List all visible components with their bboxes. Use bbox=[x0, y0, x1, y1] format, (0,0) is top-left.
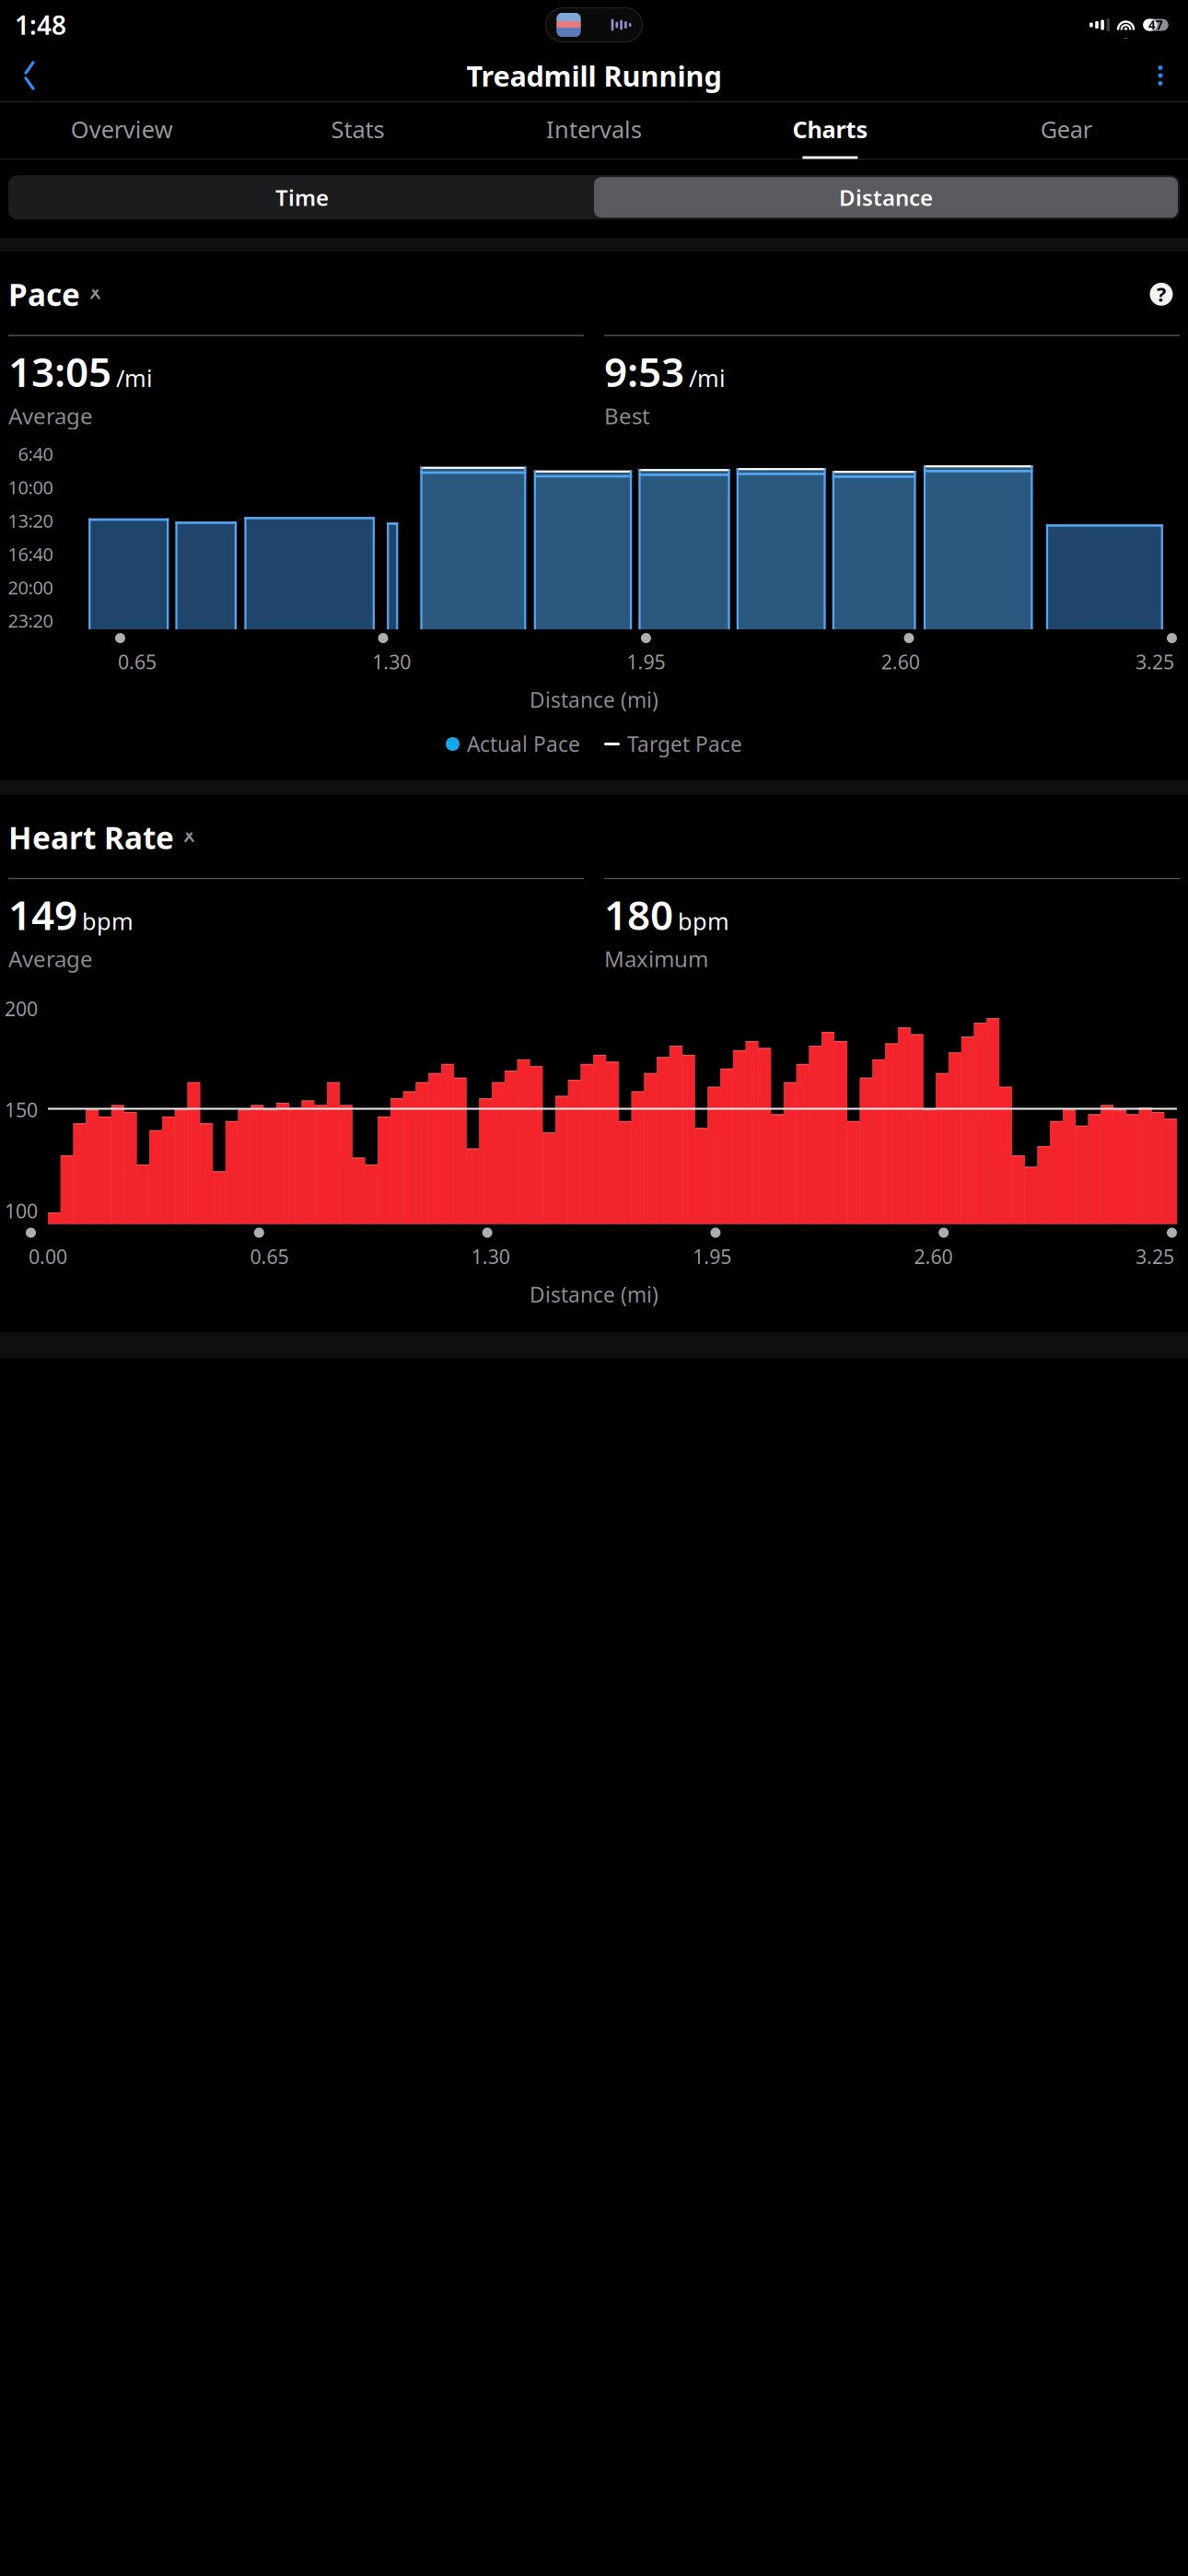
staticText: 1.95 bbox=[693, 1243, 731, 1269]
staticText: 13:20 bbox=[8, 508, 53, 533]
staticText: bpm bbox=[82, 905, 134, 936]
staticText: 20:00 bbox=[8, 575, 53, 600]
button[interactable]: Help about pace bbox=[1143, 276, 1180, 313]
staticText: Distance (mi) bbox=[530, 686, 658, 714]
staticText: 10:00 bbox=[8, 475, 53, 499]
staticText: 1.95 bbox=[627, 649, 665, 675]
staticText: Stats bbox=[331, 114, 385, 145]
button[interactable]: Time bbox=[10, 177, 594, 218]
staticText: 0.00 bbox=[29, 1243, 67, 1269]
staticText: Overview bbox=[71, 114, 173, 145]
staticText: Average bbox=[8, 401, 93, 430]
staticText: Actual Pace bbox=[467, 730, 580, 758]
staticText: Gear bbox=[1040, 114, 1092, 145]
staticText: Charts bbox=[792, 114, 868, 145]
staticText: 23:20 bbox=[8, 608, 53, 633]
staticText: 200 bbox=[5, 995, 38, 1022]
staticText: 1.30 bbox=[372, 649, 411, 675]
staticText: Treadmill Running bbox=[466, 57, 722, 94]
button[interactable]: Heart Rate bbox=[8, 811, 197, 863]
staticText: Distance (mi) bbox=[530, 1280, 658, 1308]
staticText: Distance bbox=[839, 183, 933, 212]
staticText: /mi bbox=[116, 362, 153, 393]
staticText: 13:05 bbox=[8, 344, 111, 398]
staticText: Average bbox=[8, 944, 93, 973]
staticText: 1:48 bbox=[15, 8, 66, 42]
staticText: 100 bbox=[5, 1198, 38, 1224]
button[interactable]: Overview bbox=[4, 102, 240, 159]
button[interactable]: Back bbox=[6, 53, 53, 98]
staticText: 2.60 bbox=[881, 649, 920, 675]
staticText: 149 bbox=[8, 887, 77, 941]
staticText: Pace bbox=[8, 274, 80, 315]
staticText: 180 bbox=[604, 887, 673, 941]
staticText: Target Pace bbox=[627, 730, 742, 758]
staticText: Best bbox=[604, 401, 650, 430]
staticText: 3.25 bbox=[1136, 649, 1174, 675]
staticText: 47 bbox=[1148, 17, 1163, 33]
staticText: Maximum bbox=[604, 944, 708, 973]
staticText: /mi bbox=[689, 362, 726, 393]
button[interactable]: Distance bbox=[594, 177, 1178, 218]
staticText: 2.60 bbox=[914, 1243, 953, 1269]
staticText: ? bbox=[1157, 281, 1166, 307]
button[interactable]: Stats bbox=[240, 102, 476, 159]
staticText: 9:53 bbox=[604, 344, 684, 398]
staticText: bpm bbox=[678, 905, 729, 936]
button[interactable]: Charts bbox=[712, 102, 948, 159]
button[interactable]: Gear bbox=[948, 102, 1184, 159]
staticText: 6:40 bbox=[18, 442, 53, 466]
button[interactable]: Pace bbox=[8, 268, 103, 320]
staticText: 0.65 bbox=[118, 649, 157, 675]
button[interactable]: Intervals bbox=[476, 102, 712, 159]
staticText: 150 bbox=[5, 1097, 38, 1123]
staticText: 1.30 bbox=[471, 1243, 510, 1269]
button[interactable]: More options bbox=[1138, 53, 1182, 98]
staticText: 16:40 bbox=[8, 542, 53, 566]
staticText: 3.25 bbox=[1136, 1243, 1174, 1269]
staticText: Time bbox=[275, 183, 329, 212]
staticText: Intervals bbox=[546, 114, 642, 145]
staticText: 0.65 bbox=[250, 1243, 289, 1269]
staticText: Heart Rate bbox=[8, 817, 174, 858]
